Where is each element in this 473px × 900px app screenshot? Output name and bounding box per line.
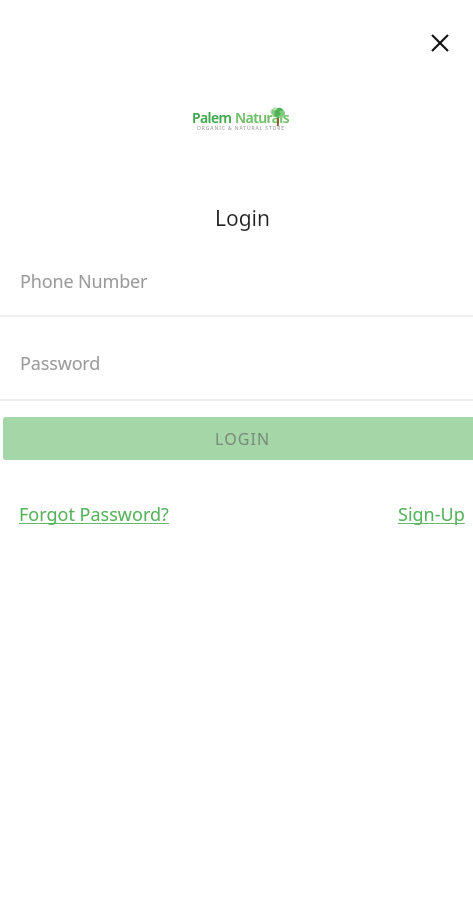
button[interactable]: Phone Number: [0, 250, 473, 313]
button[interactable]: Password: [0, 322, 473, 405]
staticText: Palem: [192, 108, 232, 127]
button[interactable]: Forgot Password?: [11, 494, 177, 535]
staticText: Naturals: [232, 108, 289, 127]
button[interactable]: Close: [416, 19, 464, 67]
staticText: ORGANIC & NATURAL STORE: [197, 125, 285, 132]
button[interactable]: Sign-Up: [390, 494, 473, 535]
staticText: Login: [215, 204, 271, 233]
staticText: Password: [20, 351, 101, 376]
staticText: Sign-Up: [398, 502, 465, 527]
button[interactable]: LOGIN: [3, 417, 473, 460]
staticText: Forgot Password?: [19, 502, 169, 527]
staticText: LOGIN: [215, 428, 271, 450]
staticText: Phone Number: [20, 269, 148, 294]
